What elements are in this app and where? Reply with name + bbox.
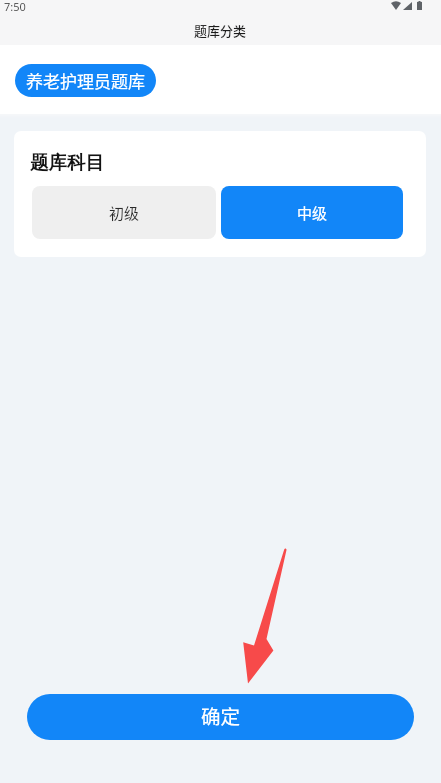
staticText: 题库分类 — [194, 21, 247, 40]
staticText: 7:50 — [4, 0, 26, 14]
staticText: 确定 — [201, 701, 241, 729]
button[interactable]: 养老护理员题库 — [15, 64, 156, 97]
button[interactable]: 初级 — [32, 186, 216, 239]
staticText: 中级 — [297, 202, 328, 224]
staticText: 题库科目 — [30, 151, 104, 174]
staticText: 养老护理员题库 — [26, 68, 145, 93]
button[interactable]: 中级 — [221, 186, 403, 239]
staticText: 初级 — [109, 202, 140, 224]
button[interactable]: 确定 — [27, 694, 414, 740]
